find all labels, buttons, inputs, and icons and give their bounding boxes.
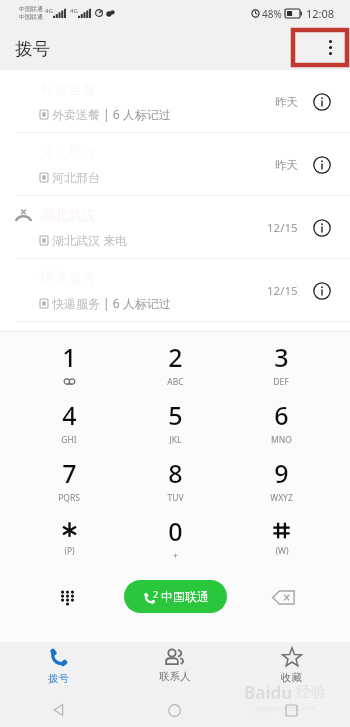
button[interactable]: 2 [122, 334, 228, 392]
staticText: 0 [168, 514, 183, 548]
staticText: + [173, 550, 178, 561]
button[interactable]: 7 [16, 450, 122, 508]
button[interactable]: Call details [309, 89, 335, 115]
button[interactable]: Hide keypad [50, 580, 84, 614]
button[interactable]: 5 [122, 392, 228, 450]
button[interactable]: Delete [266, 580, 300, 614]
staticText: | 6 人标记过 [100, 295, 171, 311]
button[interactable]: 6 [228, 392, 334, 450]
button[interactable]: Recents [233, 693, 350, 727]
staticText: 收藏 [281, 671, 302, 684]
staticText: 12:08 [306, 6, 335, 21]
staticText: 6 [274, 398, 289, 432]
button[interactable]: 8 [122, 450, 228, 508]
staticText: 12/15 [267, 283, 298, 299]
button[interactable]: 拨号 [0, 642, 116, 693]
staticText: DEF [273, 376, 289, 387]
button[interactable]: 0 [122, 508, 228, 566]
staticText: jingyan.baidu.com [255, 704, 316, 714]
staticText: 昨天 [275, 95, 298, 109]
button[interactable]: 快递服务 [0, 259, 350, 322]
button[interactable]: 湖北武汉 [0, 196, 350, 259]
staticText: WXYZ [270, 492, 293, 503]
button[interactable]: 河北邢台 [0, 133, 350, 196]
staticText: 经验 [296, 683, 326, 702]
button[interactable]: 9 [228, 450, 334, 508]
staticText: Baidu [244, 681, 293, 704]
staticText: 联系人 [159, 670, 191, 683]
button[interactable]: Back [0, 693, 116, 727]
staticText: 外卖送餐 [52, 107, 100, 122]
staticText: (P) [64, 545, 75, 556]
staticText: | 6 人标记过 [100, 106, 171, 122]
staticText: 12/15 [267, 220, 298, 236]
button[interactable]: (W) [228, 508, 334, 566]
staticText: 中国联通 [161, 589, 209, 604]
button[interactable]: 2 [124, 580, 227, 613]
staticText: 2 [153, 588, 159, 600]
staticText: 9 [274, 456, 289, 490]
staticText: 48% [262, 7, 282, 21]
staticText: GHI [61, 434, 77, 445]
staticText: 8 [168, 456, 183, 490]
staticText: 快递服务 [52, 296, 100, 311]
staticText: 5 [168, 398, 183, 432]
button[interactable]: More options [293, 30, 347, 65]
staticText: MNO [271, 434, 292, 445]
staticText: 湖北武汉 [40, 207, 96, 225]
staticText: 中国联通 [19, 13, 43, 21]
button[interactable]: 收藏 [233, 642, 350, 693]
button[interactable]: Call details [309, 215, 335, 241]
staticText: (W) [275, 545, 289, 556]
button[interactable]: Call details [309, 278, 335, 304]
staticText: 4G [45, 7, 53, 15]
button[interactable]: Call details [309, 152, 335, 178]
staticText: 4 [62, 398, 77, 432]
staticText: 4G [70, 7, 78, 15]
staticText: TUV [167, 492, 184, 503]
button[interactable]: Home [116, 693, 233, 727]
staticText: 2 [168, 340, 183, 374]
staticText: 昨天 [275, 158, 298, 172]
staticText: 河北邢台 [52, 170, 100, 185]
staticText: PQRS [58, 492, 80, 503]
button[interactable]: 4 [16, 392, 122, 450]
button[interactable]: 3 [228, 334, 334, 392]
staticText: ABC [167, 376, 184, 387]
button[interactable]: (P) [16, 508, 122, 566]
staticText: JKL [169, 434, 182, 445]
staticText: 湖北武汉 来电 [52, 232, 128, 248]
staticText: 拨号 [48, 672, 69, 685]
staticText: 拨号 [15, 38, 50, 60]
button[interactable]: 1 [16, 334, 122, 392]
staticText: 3 [274, 340, 289, 374]
button[interactable]: 联系人 [116, 642, 233, 693]
staticText: 7 [62, 456, 77, 490]
staticText: 中国联通 [19, 5, 43, 13]
staticText: 1 [62, 340, 77, 374]
button[interactable]: 外卖送餐 [0, 70, 350, 133]
